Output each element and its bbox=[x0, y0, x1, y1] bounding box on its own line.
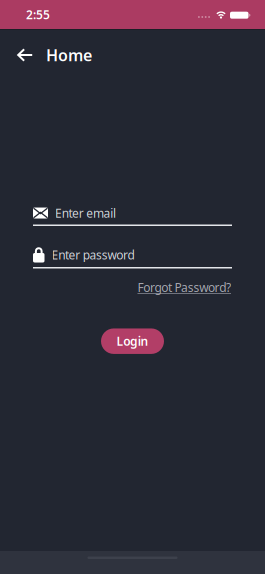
staticText: Enter password bbox=[51, 247, 135, 263]
staticText: Home bbox=[46, 44, 92, 66]
staticText: 2:55 bbox=[26, 6, 50, 22]
staticText: Enter email bbox=[55, 205, 116, 221]
staticText: Forgot Password? bbox=[137, 279, 231, 295]
button[interactable]: Forgot Password? bbox=[137, 279, 231, 295]
staticText: Login bbox=[117, 333, 148, 349]
button[interactable]: Login bbox=[101, 328, 164, 354]
button[interactable]: Enter password bbox=[33, 247, 232, 268]
button[interactable]: Enter email bbox=[33, 206, 232, 226]
button[interactable]: Back bbox=[0, 48, 33, 61]
